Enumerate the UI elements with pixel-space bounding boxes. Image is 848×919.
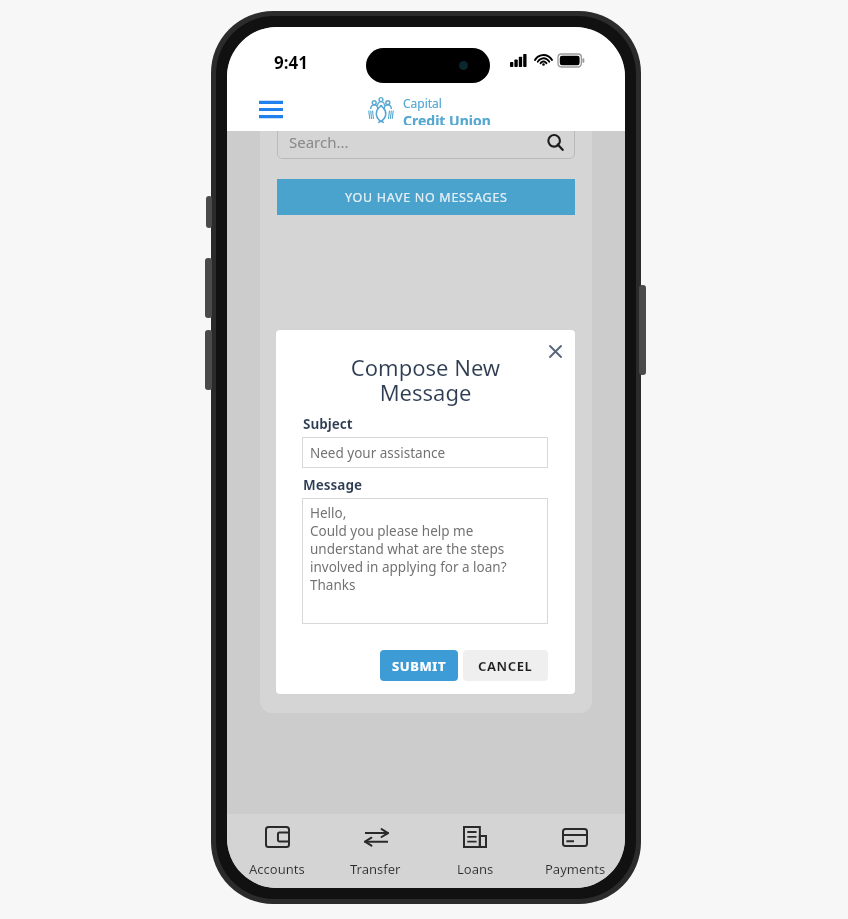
button[interactable]: Need your assistance bbox=[302, 437, 548, 468]
button[interactable]: Payments bbox=[525, 814, 625, 888]
button[interactable]: SUBMIT bbox=[380, 650, 458, 681]
staticText: 9:41 bbox=[274, 51, 308, 74]
button[interactable]: Hello, Could you please help me understa… bbox=[302, 498, 548, 624]
staticText: CANCEL bbox=[478, 657, 533, 675]
button[interactable]: CANCEL bbox=[463, 650, 548, 681]
button[interactable]: Close bbox=[542, 338, 568, 364]
staticText: Compose New Message bbox=[300, 352, 551, 408]
staticText: Hello, Could you please help me understa… bbox=[310, 504, 507, 594]
button[interactable]: Accounts bbox=[227, 814, 326, 888]
staticText: Search... bbox=[289, 132, 349, 152]
staticText: Credit Union bbox=[403, 111, 491, 125]
button[interactable]: Capital bbox=[364, 95, 491, 125]
staticText: SUBMIT bbox=[392, 657, 447, 675]
staticText: Message bbox=[303, 476, 363, 494]
button[interactable]: Loans bbox=[425, 814, 525, 888]
staticText: Accounts bbox=[249, 860, 305, 878]
button[interactable]: YOU HAVE NO MESSAGES bbox=[277, 179, 575, 215]
button[interactable]: Menu bbox=[251, 94, 291, 124]
staticText: Capital bbox=[403, 95, 442, 111]
button[interactable]: Transfer bbox=[326, 814, 425, 888]
staticText: Subject bbox=[303, 415, 353, 433]
staticText: Need your assistance bbox=[310, 444, 446, 462]
staticText: Payments bbox=[545, 860, 606, 878]
staticText: Transfer bbox=[350, 860, 401, 878]
staticText: Loans bbox=[457, 860, 494, 878]
button[interactable]: Search... bbox=[277, 125, 575, 159]
staticText: YOU HAVE NO MESSAGES bbox=[345, 189, 508, 206]
